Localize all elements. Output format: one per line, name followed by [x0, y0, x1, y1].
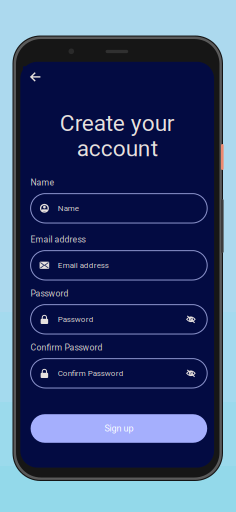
button[interactable]: Back — [23, 66, 48, 87]
staticText: Email address — [58, 261, 109, 270]
staticText: account — [77, 135, 158, 162]
button[interactable]: Email address — [31, 251, 207, 280]
staticText: Create your — [60, 110, 175, 137]
staticText: Password — [31, 288, 69, 299]
staticText: Confirm Password — [31, 342, 103, 353]
staticText: Sign up — [104, 423, 133, 434]
button[interactable]: Password — [31, 305, 207, 334]
button[interactable]: Sign up — [31, 414, 207, 443]
staticText: Name — [58, 204, 79, 213]
button[interactable]: Name — [31, 194, 207, 223]
staticText: Confirm Password — [58, 369, 124, 378]
staticText: Password — [58, 315, 94, 324]
button[interactable]: Confirm Password — [31, 359, 207, 388]
staticText: Email address — [31, 234, 86, 245]
staticText: Name — [31, 177, 55, 188]
